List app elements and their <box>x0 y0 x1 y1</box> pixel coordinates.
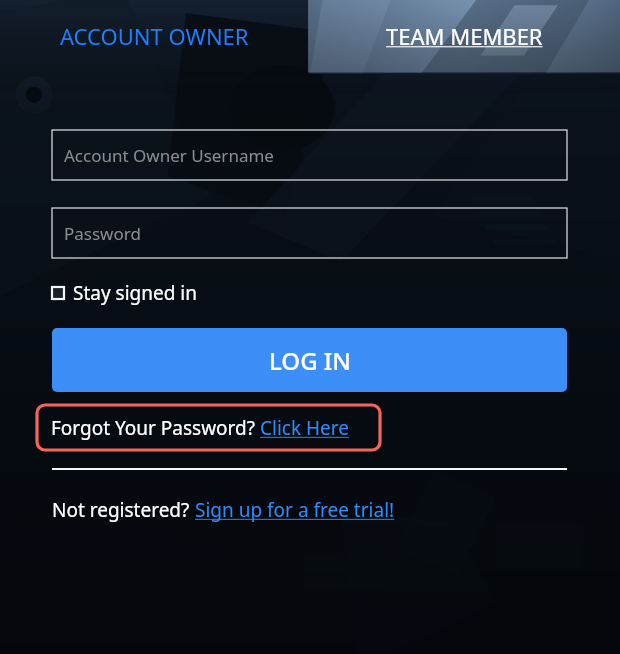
button[interactable]: Account Owner Username <box>52 130 567 180</box>
button[interactable]: TEAM MEMBER <box>308 0 620 72</box>
staticText: Password <box>64 222 141 245</box>
button[interactable]: ACCOUNT OWNER <box>0 0 308 72</box>
button[interactable]: Password <box>52 208 567 258</box>
button[interactable]: LOG IN <box>52 328 567 392</box>
button[interactable]: Stay signed in <box>52 280 197 306</box>
staticText: Not registered? <box>52 497 195 523</box>
staticText: Account Owner Username <box>64 144 274 167</box>
staticText: LOG IN <box>269 344 351 377</box>
staticText: TEAM MEMBER <box>386 21 543 51</box>
staticText: Sign up for a free trial! <box>195 497 395 523</box>
button[interactable]: Sign up for a free trial! <box>195 497 395 523</box>
staticText: Click Here <box>260 415 349 441</box>
staticText: Forgot Your Password? <box>51 415 260 441</box>
staticText: ACCOUNT OWNER <box>60 21 249 51</box>
button[interactable]: Forgot Your Password? <box>37 405 380 450</box>
staticText: Stay signed in <box>73 280 197 306</box>
